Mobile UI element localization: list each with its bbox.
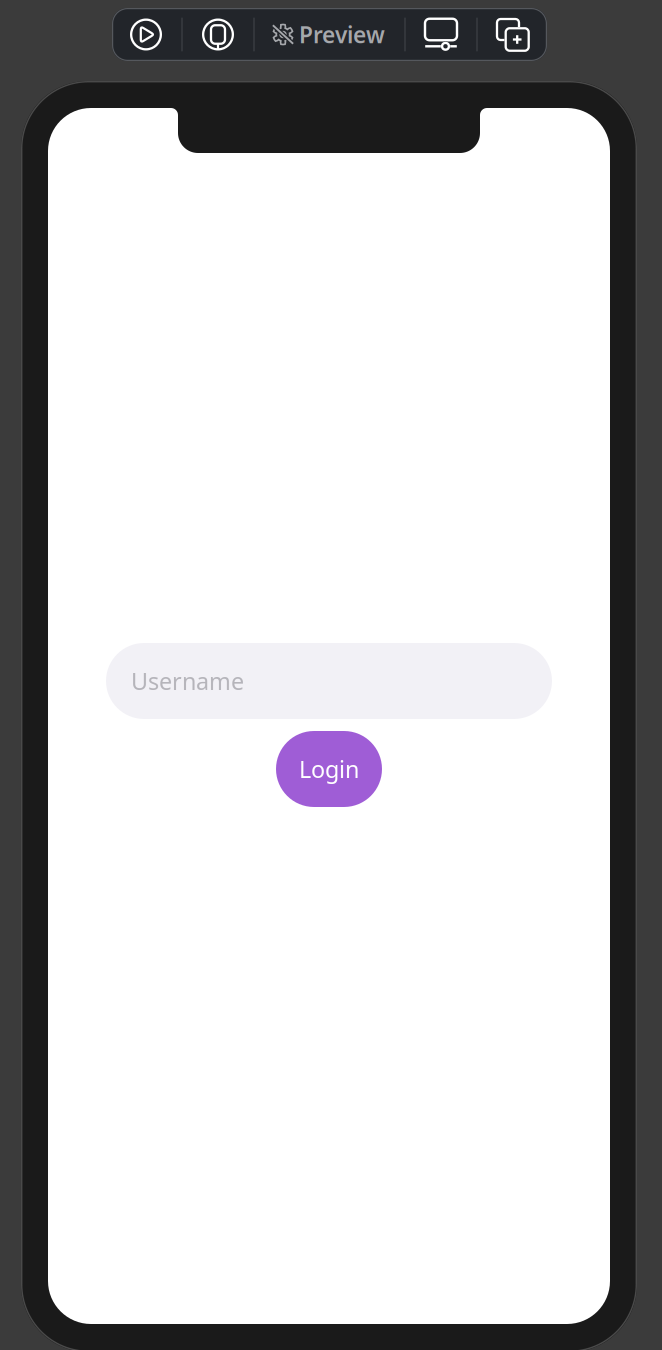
button[interactable]: Add preview	[479, 8, 547, 61]
button[interactable]: Login	[276, 731, 382, 807]
button[interactable]: Run preview	[111, 8, 181, 61]
staticText: Preview	[299, 19, 385, 49]
button[interactable]: Username	[106, 643, 552, 719]
staticText: Login	[299, 753, 359, 785]
button[interactable]: Preview	[254, 8, 400, 61]
button[interactable]: Display options	[406, 8, 476, 61]
button[interactable]: Preview device	[183, 8, 253, 61]
staticText: Username	[131, 665, 244, 697]
